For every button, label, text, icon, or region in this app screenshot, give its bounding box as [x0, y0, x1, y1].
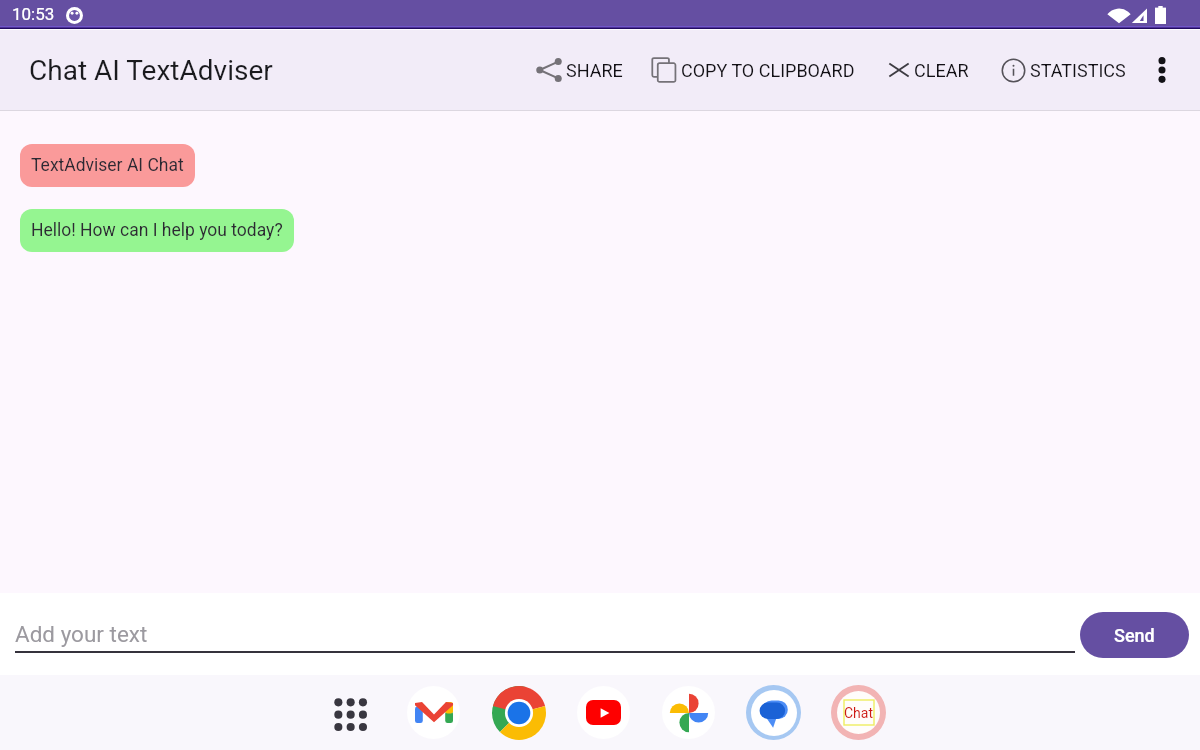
staticText: SHARE	[566, 60, 623, 81]
button[interactable]: Hello! How can I help you today?	[20, 209, 294, 252]
button[interactable]: Apps	[320, 684, 377, 741]
button[interactable]: Chat	[830, 684, 887, 741]
button[interactable]: TextAdviser AI Chat	[20, 144, 195, 187]
staticText: CLEAR	[914, 60, 969, 81]
button[interactable]: YouTube	[575, 684, 632, 741]
staticText: 10:53	[12, 4, 55, 24]
button[interactable]: Send	[1080, 612, 1189, 658]
button[interactable]: SHARE	[536, 51, 623, 89]
button[interactable]: CLEAR	[888, 53, 969, 87]
button[interactable]: Messages	[745, 684, 802, 741]
button[interactable]: More options	[1142, 50, 1182, 90]
button[interactable]: Photos	[660, 684, 717, 741]
button[interactable]: Chrome	[490, 684, 547, 741]
staticText: TextAdviser AI Chat	[31, 155, 184, 176]
button[interactable]: COPY TO CLIPBOARD	[651, 51, 855, 89]
staticText: Chat AI TextAdviser	[29, 54, 273, 87]
staticText: Add your text	[15, 621, 148, 647]
button[interactable]: STATISTICS	[1001, 52, 1126, 89]
staticText: COPY TO CLIPBOARD	[681, 60, 855, 81]
button[interactable]: Gmail	[405, 684, 462, 741]
staticText: STATISTICS	[1030, 60, 1126, 81]
staticText: Send	[1114, 625, 1155, 646]
staticText: Chat	[844, 705, 874, 721]
staticText: Hello! How can I help you today?	[31, 220, 283, 241]
